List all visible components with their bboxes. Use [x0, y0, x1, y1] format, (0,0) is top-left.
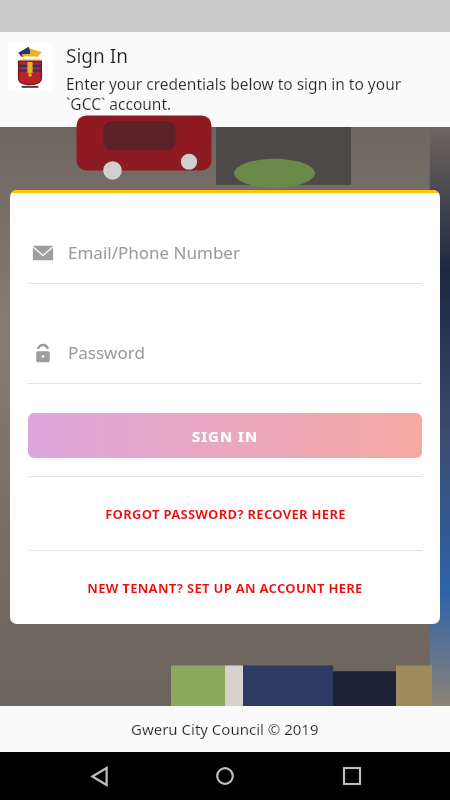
button[interactable]: Email/Phone Number [32, 241, 418, 264]
button[interactable]: Back [71, 752, 127, 800]
button[interactable]: Home [197, 752, 253, 800]
button[interactable]: Password [32, 341, 418, 364]
staticText: Enter your credentials below to sign in … [66, 73, 440, 115]
staticText: Gweru City Council © 2019 [131, 719, 319, 739]
staticText: NEW TENANT? SET UP AN ACCOUNT HERE [87, 579, 363, 597]
button[interactable]: NEW TENANT? SET UP AN ACCOUNT HERE [10, 551, 440, 624]
button[interactable]: SIGN IN [28, 413, 422, 458]
staticText: SIGN IN [192, 426, 259, 446]
staticText: Sign In [66, 43, 128, 69]
staticText: FORGOT PASSWORD? RECOVER HERE [105, 505, 346, 523]
staticText: Password [68, 341, 145, 364]
button[interactable]: Recent apps [324, 752, 380, 800]
staticText: Email/Phone Number [68, 241, 240, 264]
button[interactable]: FORGOT PASSWORD? RECOVER HERE [10, 477, 440, 550]
